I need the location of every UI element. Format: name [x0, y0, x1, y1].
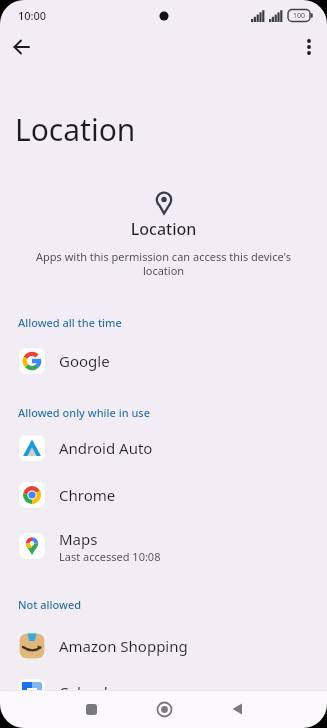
staticText: Maps	[59, 529, 98, 549]
button[interactable]	[144, 690, 184, 728]
button[interactable]: Google	[0, 338, 327, 384]
button[interactable]: Maps	[0, 519, 327, 573]
button[interactable]	[217, 690, 257, 728]
staticText: Last accessed 10:08	[59, 549, 161, 564]
staticText: Location	[0, 218, 327, 240]
staticText: 10:00	[18, 8, 47, 23]
staticText: Allowed only while in use	[18, 405, 150, 420]
button[interactable]: Amazon Shopping	[0, 623, 327, 669]
staticText: Amazon Shopping	[59, 636, 188, 656]
button[interactable]: Calendar	[0, 669, 327, 715]
staticText: Google	[59, 351, 110, 371]
staticText: 100	[293, 11, 306, 21]
staticText: Calendar	[59, 682, 123, 702]
button[interactable]	[71, 690, 111, 728]
staticText: Chrome	[59, 485, 116, 505]
button[interactable]: Android Auto	[0, 425, 327, 471]
button[interactable]: Chrome	[0, 472, 327, 518]
staticText: Allowed all the time	[18, 315, 122, 330]
button[interactable]	[8, 33, 36, 61]
staticText: Apps with this permission can access thi…	[0, 249, 327, 278]
button[interactable]	[295, 33, 323, 61]
staticText: Not allowed	[18, 597, 82, 612]
staticText: Android Auto	[59, 438, 153, 458]
staticText: Location	[15, 109, 136, 150]
